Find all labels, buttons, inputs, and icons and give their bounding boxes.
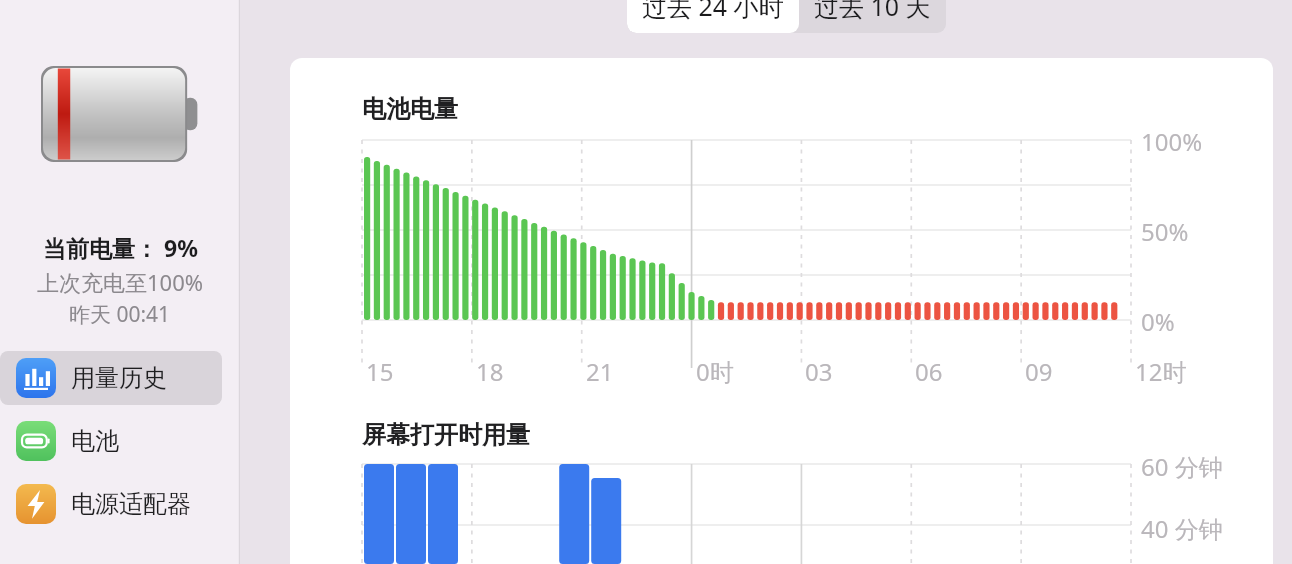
staticText: 60 分钟 [1141, 450, 1223, 483]
button[interactable]: 电源适配器 [0, 477, 222, 531]
staticText: 15 [366, 355, 394, 388]
staticText: 03 [805, 355, 833, 388]
staticText: 昨天 00:41 [69, 300, 171, 329]
other: 电池 [41, 66, 199, 162]
staticText: 100% [1141, 125, 1203, 158]
staticText: 0% [1141, 305, 1175, 338]
staticText: 0时 [696, 355, 734, 388]
staticText: 电池 [71, 426, 119, 456]
button[interactable]: 过去 10 天 [799, 0, 946, 33]
staticText: 过去 24 小时 [642, 0, 784, 23]
staticText: 40 分钟 [1141, 512, 1223, 545]
staticText: 50% [1141, 215, 1189, 248]
staticText: 用量历史 [71, 363, 167, 393]
staticText: 09 [1025, 355, 1053, 388]
button[interactable]: 过去 24 小时 [627, 0, 799, 33]
staticText: 06 [915, 355, 943, 388]
staticText: 电池电量 [362, 94, 458, 124]
button[interactable]: 用量历史 [0, 351, 222, 405]
staticText: 21 [586, 355, 614, 388]
staticText: 12时 [1135, 355, 1187, 388]
staticText: 电源适配器 [71, 489, 191, 519]
staticText: 屏幕打开时用量 [362, 420, 530, 450]
staticText: 当前电量： 9% [43, 232, 198, 263]
staticText: 18 [476, 355, 504, 388]
button[interactable]: 电池 [0, 414, 222, 468]
staticText: 过去 10 天 [814, 0, 931, 23]
staticText: 上次充电至100% [37, 267, 204, 297]
